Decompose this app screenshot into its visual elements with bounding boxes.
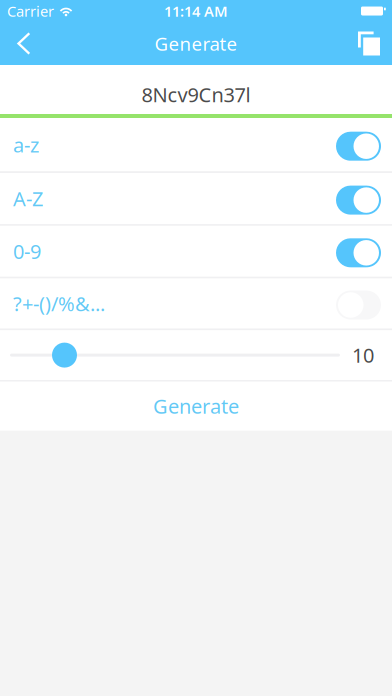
button[interactable]: A-Z xyxy=(0,173,392,224)
staticText: 11:14 AM xyxy=(164,1,228,21)
staticText: a-z xyxy=(13,131,39,158)
staticText: ?+-()/%&... xyxy=(13,290,105,317)
button[interactable]: Generate xyxy=(0,382,392,431)
button[interactable]: 0-9 xyxy=(0,226,392,277)
staticText: 0-9 xyxy=(13,238,41,265)
button[interactable]: a-z xyxy=(0,118,392,171)
button[interactable]: Back xyxy=(2,22,46,65)
staticText: 8Ncv9Cn37l xyxy=(141,81,250,108)
button[interactable]: ?+-()/%&... xyxy=(0,278,392,329)
staticText: Carrier xyxy=(7,1,54,21)
staticText: Generate xyxy=(154,31,237,56)
button[interactable]: Copy password xyxy=(347,22,391,65)
staticText: 10 xyxy=(352,342,374,368)
staticText: Generate xyxy=(153,393,239,419)
staticText: A-Z xyxy=(13,185,43,212)
